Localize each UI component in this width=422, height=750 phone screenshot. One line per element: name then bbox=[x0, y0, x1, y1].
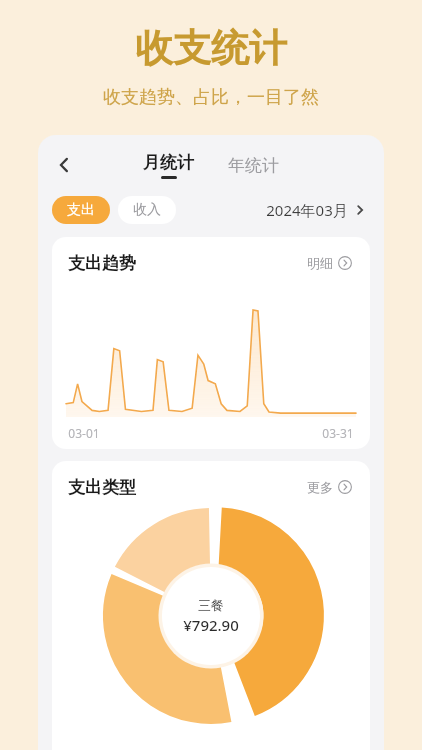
button[interactable]: 支出 bbox=[52, 196, 110, 224]
staticText: 03-01 bbox=[68, 425, 100, 441]
button[interactable]: 年统计 bbox=[222, 151, 285, 180]
button[interactable]: 支出类型 bbox=[52, 461, 370, 750]
staticText: 支出趋势 bbox=[68, 253, 136, 274]
staticText: 年统计 bbox=[228, 155, 279, 176]
button[interactable]: 月统计 bbox=[137, 152, 200, 179]
button[interactable]: 2024年03月 bbox=[262, 196, 370, 224]
button[interactable]: Back bbox=[48, 149, 80, 181]
button[interactable]: 收入 bbox=[118, 196, 176, 224]
staticText: ¥792.90 bbox=[183, 615, 239, 635]
button[interactable]: 支出趋势 bbox=[52, 237, 370, 449]
staticText: 月统计 bbox=[143, 152, 194, 173]
staticText: 收入 bbox=[133, 201, 161, 219]
staticText: 2024年03月 bbox=[266, 200, 348, 220]
staticText: 收支趋势、占比，一目了然 bbox=[103, 86, 319, 109]
staticText: 支出类型 bbox=[68, 477, 136, 498]
button[interactable]: 明细 bbox=[303, 251, 356, 275]
staticText: 三餐 bbox=[198, 597, 224, 613]
staticText: 支出 bbox=[67, 201, 95, 219]
staticText: 更多 bbox=[307, 479, 333, 495]
staticText: 03-31 bbox=[322, 425, 354, 441]
staticText: 明细 bbox=[307, 255, 333, 271]
staticText: 收支统计 bbox=[135, 24, 287, 72]
button[interactable]: 更多 bbox=[303, 475, 356, 499]
